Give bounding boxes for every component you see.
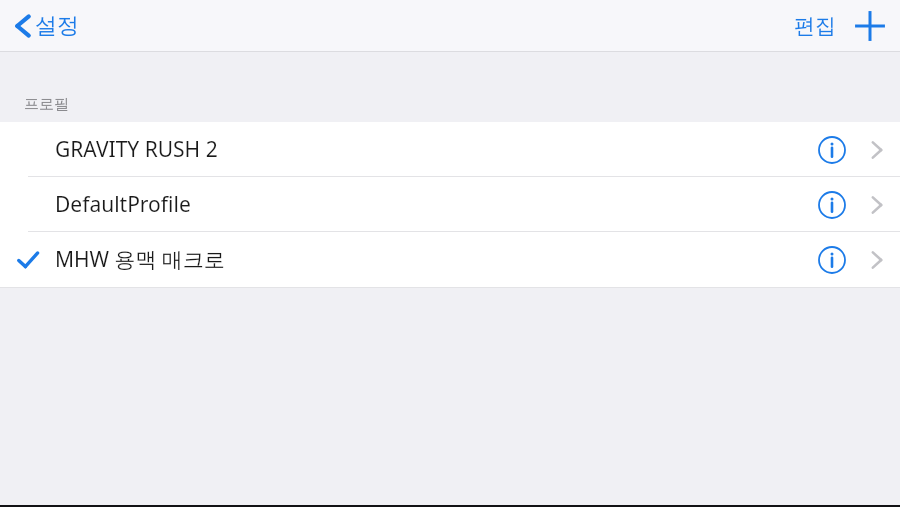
button[interactable]: More info about DefaultProfile bbox=[810, 183, 854, 227]
button[interactable]: Add profile bbox=[846, 4, 894, 48]
staticText: 설정 bbox=[35, 12, 79, 40]
button[interactable]: 설정 bbox=[10, 6, 83, 46]
staticText: 프로필 bbox=[24, 95, 69, 114]
button[interactable]: More info about GRAVITY RUSH 2 bbox=[810, 128, 854, 172]
button[interactable]: GRAVITY RUSH 2 bbox=[0, 122, 900, 177]
staticText: 편집 bbox=[794, 13, 836, 39]
staticText: GRAVITY RUSH 2 bbox=[55, 135, 218, 164]
staticText: DefaultProfile bbox=[55, 190, 191, 219]
button[interactable]: DefaultProfile bbox=[0, 177, 900, 232]
button[interactable]: More info about MHW 용맥 매크로 bbox=[810, 238, 854, 282]
staticText: MHW 용맥 매크로 bbox=[55, 245, 226, 274]
button[interactable]: MHW 용맥 매크로 bbox=[0, 232, 900, 287]
button[interactable]: 편집 bbox=[784, 5, 846, 47]
